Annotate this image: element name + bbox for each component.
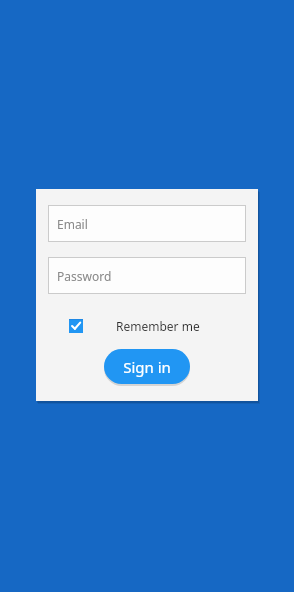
button[interactable]: Sign in: [104, 349, 190, 384]
staticText: Email: [57, 216, 88, 232]
staticText: Password: [57, 268, 112, 284]
staticText: Sign in: [123, 357, 171, 377]
button[interactable]: Password: [48, 257, 246, 294]
staticText: Remember me: [116, 318, 200, 334]
button[interactable]: Email: [48, 205, 246, 242]
button[interactable]: Remember me checkbox: [66, 316, 86, 336]
